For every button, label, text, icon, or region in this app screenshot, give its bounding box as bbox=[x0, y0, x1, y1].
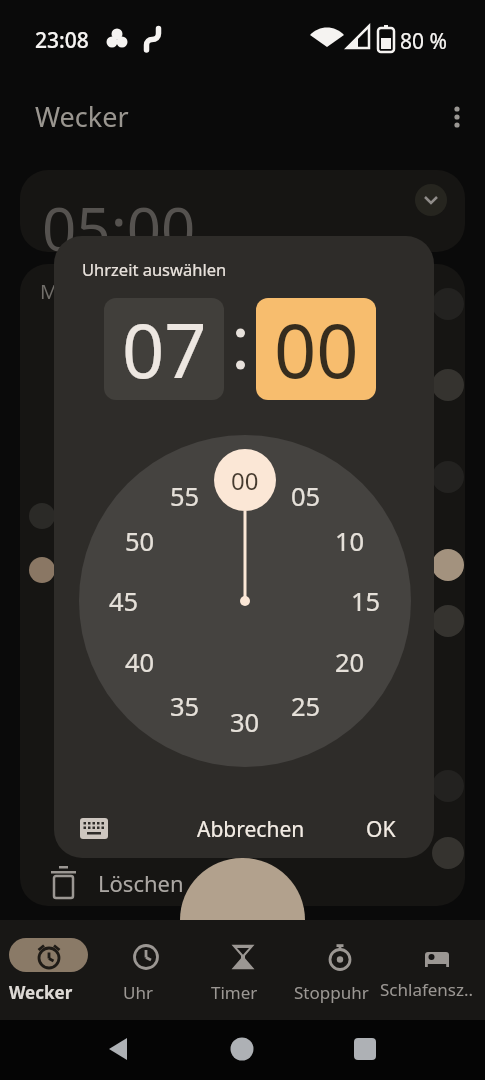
staticText: Abbrechen bbox=[197, 815, 305, 844]
staticText: Wecker bbox=[9, 981, 73, 1004]
button[interactable]: Abbrechen bbox=[184, 807, 318, 851]
button[interactable]: 00 bbox=[256, 298, 376, 400]
staticText: Schlafensz... bbox=[380, 978, 477, 1006]
staticText: 20 bbox=[335, 645, 365, 680]
button[interactable] bbox=[415, 184, 447, 216]
button[interactable]: Timer bbox=[194, 920, 291, 1020]
button[interactable]: Wecker bbox=[0, 920, 97, 1020]
staticText: 40 bbox=[125, 645, 155, 680]
staticText: 00 bbox=[231, 464, 259, 497]
staticText: Löschen bbox=[98, 868, 184, 898]
staticText: Uhr bbox=[123, 981, 153, 1004]
button[interactable]: Stoppuhr bbox=[291, 920, 388, 1020]
staticText: 30 bbox=[230, 705, 260, 740]
button[interactable]: Uhr bbox=[97, 920, 194, 1020]
staticText: 10 bbox=[335, 524, 365, 559]
staticText: 35 bbox=[170, 689, 200, 724]
staticText: 55 bbox=[170, 479, 200, 514]
staticText: 05 bbox=[291, 479, 321, 514]
staticText: 05:00 bbox=[42, 187, 196, 252]
staticText: 00 bbox=[274, 299, 359, 400]
staticText: 45 bbox=[109, 584, 139, 619]
button[interactable]: 07 bbox=[104, 298, 224, 400]
button[interactable]: OK bbox=[346, 807, 416, 851]
button[interactable] bbox=[180, 858, 305, 920]
button[interactable] bbox=[74, 808, 116, 850]
staticText: 50 bbox=[125, 524, 155, 559]
staticText: Stoppuhr bbox=[294, 981, 369, 1004]
staticText: 15 bbox=[351, 584, 381, 619]
staticText: Timer bbox=[211, 981, 258, 1004]
staticText: 23:08 bbox=[35, 26, 89, 55]
staticText: M bbox=[40, 278, 59, 305]
staticText: OK bbox=[366, 815, 396, 844]
button[interactable]: Schlafensz... bbox=[388, 920, 485, 1020]
staticText: 80 % bbox=[400, 27, 447, 56]
button[interactable]: Wecker bbox=[0, 60, 485, 170]
staticText: Wecker bbox=[35, 98, 129, 135]
staticText: Uhrzeit auswählen bbox=[82, 258, 227, 280]
button[interactable] bbox=[79, 435, 411, 767]
staticText: 07 bbox=[122, 299, 207, 400]
staticText: 25 bbox=[291, 689, 321, 724]
